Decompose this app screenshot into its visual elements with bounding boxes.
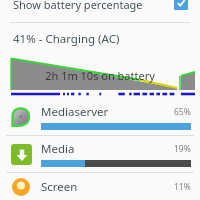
- staticText: 2h 1m 10s on battery: [45, 68, 155, 83]
- staticText: Screen: [41, 179, 78, 195]
- button[interactable]: Media: [0, 136, 200, 172]
- staticText: Mediaserver: [41, 104, 109, 120]
- staticText: Show battery percentage: [13, 0, 143, 12]
- staticText: 41% - Charging (AC): [13, 31, 120, 47]
- other: Show battery percentage checkbox: [174, 0, 188, 10]
- button[interactable]: Mediaserver: [0, 99, 200, 135]
- staticText: Media: [41, 141, 75, 157]
- staticText: 65%: [174, 106, 191, 118]
- staticText: 19%: [174, 143, 191, 155]
- button[interactable]: Show battery percentage: [0, 0, 200, 18]
- button[interactable]: Screen: [0, 173, 200, 200]
- staticText: 11%: [174, 181, 191, 193]
